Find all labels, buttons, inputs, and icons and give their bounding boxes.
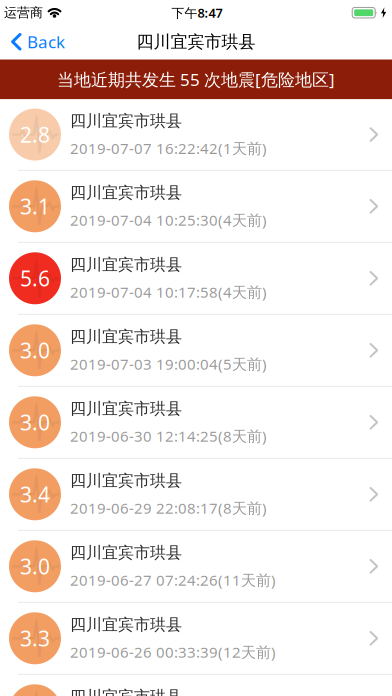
staticText: 四川宜宾市珙县	[70, 399, 182, 418]
button[interactable]: 3.1	[0, 171, 392, 243]
button[interactable]: 3.2	[0, 675, 392, 696]
staticText: 2019-06-27 07:24:26(11天前)	[70, 570, 276, 590]
staticText: 下午8:47	[171, 4, 222, 21]
staticText: 2019-06-29 22:08:17(8天前)	[70, 498, 267, 518]
staticText: 四川宜宾市珙县	[70, 111, 182, 131]
staticText: 2019-06-26 00:33:39(12天前)	[70, 642, 276, 662]
staticText: 四川宜宾市珙县	[70, 615, 182, 634]
staticText: 四川宜宾市珙县	[70, 471, 182, 490]
staticText: 2019-07-04 10:17:58(4天前)	[70, 282, 267, 302]
staticText: 2019-07-03 19:00:04(5天前)	[70, 354, 267, 374]
staticText: 当地近期共发生 55 次地震[危险地区]	[57, 68, 335, 91]
button[interactable]: 3.0	[0, 531, 392, 603]
staticText: 2019-07-04 10:25:30(4天前)	[70, 210, 267, 230]
staticText: 四川宜宾市珙县	[70, 183, 182, 202]
staticText: 2019-06-30 12:14:25(8天前)	[70, 426, 267, 446]
staticText: 四川宜宾市珙县	[70, 687, 182, 696]
staticText: 四川宜宾市珙县	[70, 543, 182, 562]
staticText: 2019-07-07 16:22:42(1天前)	[70, 138, 267, 158]
staticText: 3.0	[20, 552, 50, 580]
button[interactable]: 3.0	[0, 387, 392, 459]
staticText: 3.3	[20, 624, 50, 652]
button[interactable]: 当地近期共发生 55 次地震[危险地区]	[0, 59, 392, 99]
staticText: 5.6	[20, 264, 50, 292]
staticText: 3.4	[20, 480, 50, 508]
button[interactable]: Back	[0, 30, 65, 53]
staticText: 四川宜宾市珙县	[136, 31, 255, 52]
button[interactable]: 3.3	[0, 603, 392, 675]
button[interactable]: 5.6	[0, 243, 392, 315]
staticText: 四川宜宾市珙县	[70, 255, 182, 274]
button[interactable]: 3.4	[0, 459, 392, 531]
button[interactable]: 2.8	[0, 99, 392, 171]
staticText: Back	[27, 30, 65, 53]
staticText: 2.8	[20, 121, 50, 148]
staticText: 3.0	[20, 336, 50, 364]
button[interactable]: 3.0	[0, 315, 392, 387]
staticText: 3.0	[20, 408, 50, 436]
staticText: 运营商	[4, 5, 43, 21]
staticText: 3.1	[20, 192, 50, 220]
staticText: 四川宜宾市珙县	[70, 327, 182, 346]
